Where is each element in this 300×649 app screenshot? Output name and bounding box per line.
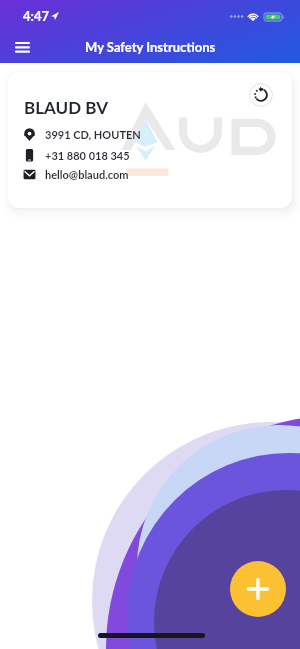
button[interactable]: hello@blaud.com [8,165,292,183]
staticText: BLAUD BV [24,97,108,117]
staticText: 3991 CD, HOUTEN [45,128,141,141]
button[interactable]: BLAUD BV [8,72,292,208]
button[interactable]: +31 880 018 345 [8,146,292,164]
button[interactable]: Menu [9,34,35,60]
button[interactable]: Refresh [249,83,273,107]
staticText: hello@blaud.com [45,168,129,181]
button[interactable]: 3991 CD, HOUTEN [8,125,292,143]
staticText: +31 880 018 345 [45,149,130,162]
staticText: My Safety Instructions [85,39,216,55]
staticText: 4:47 [23,8,49,24]
button[interactable]: Add [230,561,286,617]
